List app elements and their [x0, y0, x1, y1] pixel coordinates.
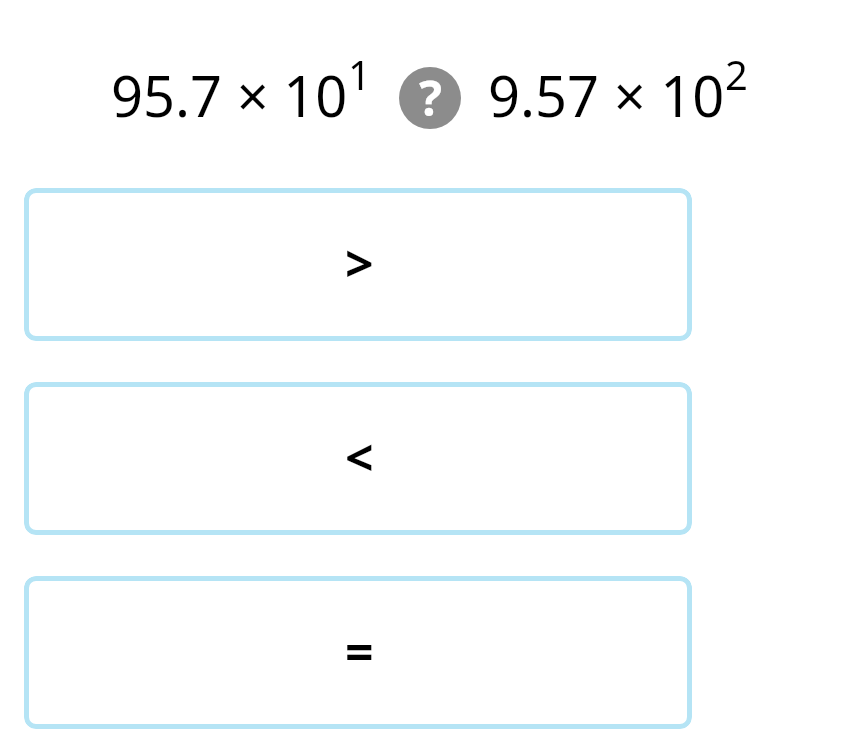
- staticText: 9.57 × 10: [488, 57, 725, 133]
- staticText: ?: [419, 67, 442, 127]
- staticText: 95.7 × 10: [111, 57, 348, 133]
- other: 9.57 times 10 to the power 2: [488, 57, 748, 133]
- button[interactable]: >: [24, 188, 692, 341]
- button[interactable]: =: [24, 576, 692, 729]
- staticText: >: [345, 229, 374, 297]
- button[interactable]: <: [24, 382, 692, 535]
- other: 95.7 times 10 to the power 1: [111, 57, 371, 133]
- button[interactable]: Unknown comparison, tap for help: [399, 67, 461, 129]
- staticText: 1: [348, 47, 371, 101]
- staticText: 2: [725, 47, 748, 101]
- staticText: <: [345, 423, 374, 491]
- staticText: =: [345, 617, 374, 685]
